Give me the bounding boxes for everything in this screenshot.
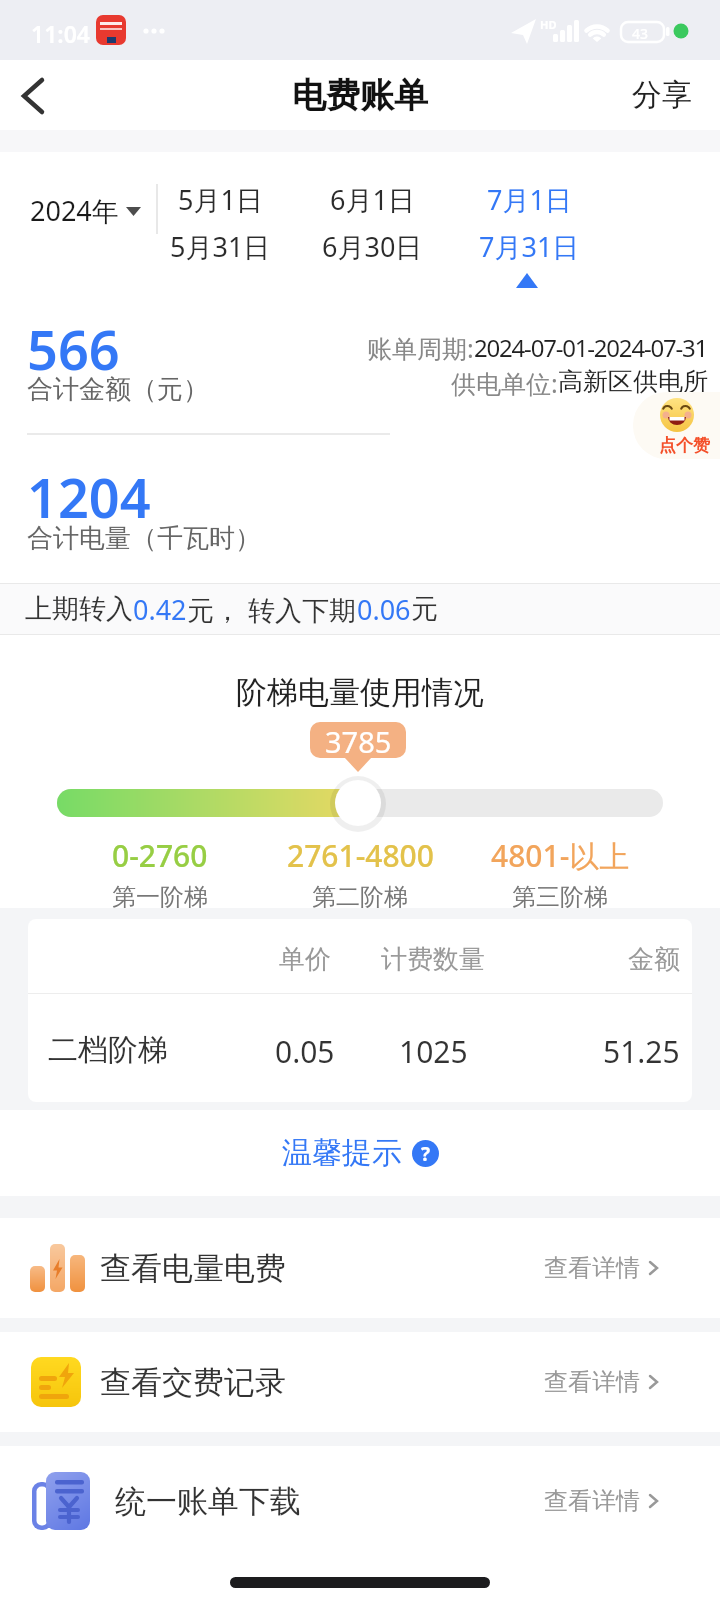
button[interactable]: 查看交费记录	[0, 1332, 720, 1432]
staticText: 查看详情	[544, 1367, 640, 1397]
button[interactable]: 查看电量电费	[0, 1218, 720, 1318]
button[interactable]: 2024年	[30, 192, 141, 229]
staticText: 单价	[279, 943, 331, 973]
staticText: 第一阶梯	[112, 882, 208, 912]
staticText: 上期转入	[25, 592, 133, 626]
staticText: 查看详情	[544, 1486, 640, 1516]
staticText: 高新区供电所	[558, 366, 708, 397]
staticText: 51.25	[603, 1031, 680, 1065]
staticText: 43	[632, 24, 649, 43]
staticText: 阶梯电量使用情况	[236, 673, 484, 712]
staticText: 2024年	[30, 192, 119, 229]
staticText: 金额	[628, 943, 680, 973]
staticText: 电费账单	[292, 74, 428, 117]
button[interactable]: 统一账单下载	[0, 1446, 720, 1556]
staticText: 第二阶梯	[312, 882, 408, 912]
staticText: 5月1日	[178, 181, 263, 218]
staticText: 合计金额（元）	[27, 373, 209, 406]
staticText: 1025	[399, 1031, 468, 1065]
staticText: HD	[540, 17, 557, 32]
button[interactable]: 5月1日	[145, 181, 295, 265]
staticText: 元	[411, 592, 438, 626]
staticText: 566	[27, 312, 120, 386]
staticText: 0.05	[275, 1031, 335, 1065]
button[interactable]: 分享	[632, 76, 692, 114]
staticText: 3785	[325, 722, 392, 758]
staticText: 1204	[27, 460, 151, 534]
staticText: 2761-4800	[287, 835, 434, 876]
staticText: 查看交费记录	[100, 1363, 286, 1402]
staticText: 温馨提示	[282, 1134, 402, 1172]
staticText: 7月1日	[487, 181, 572, 218]
staticText: 6月1日	[330, 181, 415, 218]
staticText: 0.06	[357, 591, 411, 628]
staticText: 账单周期:	[367, 331, 474, 365]
button[interactable]: 温馨提示	[282, 1134, 439, 1172]
staticText: 0-2760	[112, 835, 208, 876]
button[interactable]: 6月1日	[297, 181, 447, 265]
staticText: 5月31日	[170, 228, 271, 265]
staticText: 2024-07-01-2024-07-31	[474, 331, 708, 364]
button[interactable]: 7月1日	[454, 181, 604, 265]
staticText: 分享	[632, 76, 692, 114]
staticText: 4801-以上	[491, 835, 630, 876]
staticText: 二档阶梯	[48, 1031, 168, 1065]
staticText: ?	[421, 1141, 431, 1167]
staticText: 11:04	[31, 18, 90, 49]
staticText: 统一账单下载	[115, 1482, 301, 1521]
staticText: 元， 转入下期	[187, 591, 357, 628]
staticText: 6月30日	[322, 228, 423, 265]
staticText: 供电单位:	[451, 366, 558, 400]
staticText: 查看电量电费	[100, 1249, 286, 1288]
staticText: 7月31日	[479, 228, 580, 265]
button[interactable]: 点个赞	[633, 392, 720, 459]
staticText: 查看详情	[544, 1253, 640, 1283]
staticText: 第三阶梯	[512, 882, 608, 912]
staticText: 0.42	[133, 591, 187, 628]
staticText: 点个赞	[659, 435, 710, 456]
staticText: 计费数量	[381, 943, 485, 973]
staticText: 合计电量（千瓦时）	[27, 522, 261, 555]
button[interactable]	[10, 78, 54, 114]
